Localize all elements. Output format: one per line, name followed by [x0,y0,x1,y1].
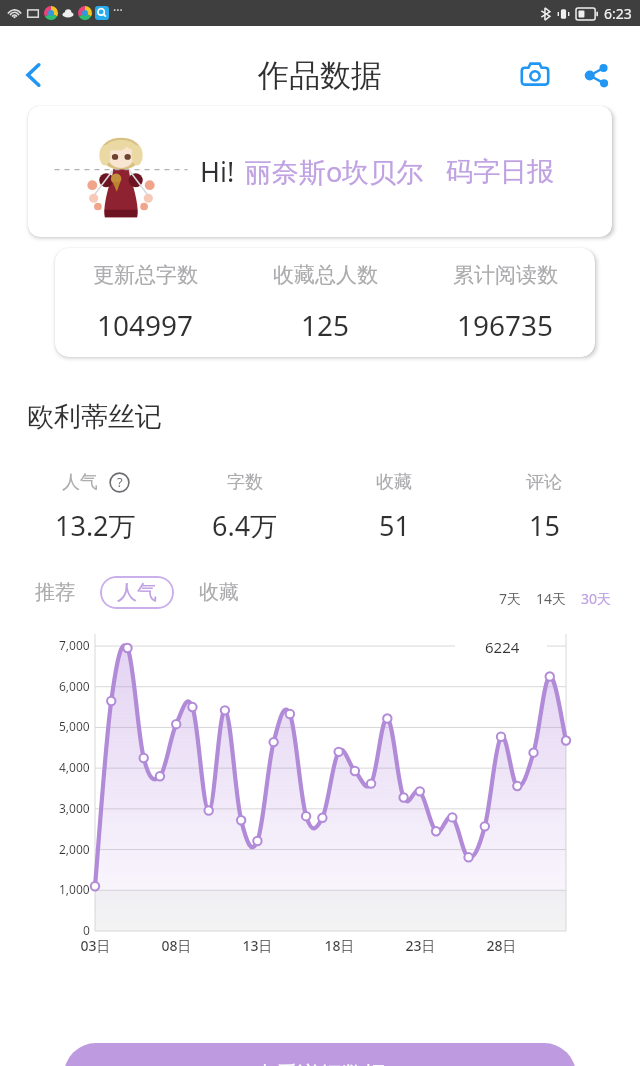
staticText: 4,000 [59,759,90,775]
staticText: 累计阅读数 [453,262,558,288]
staticText: 23日 [405,936,436,955]
button[interactable]: 推荐 [31,573,79,611]
staticText: 3,000 [59,800,90,816]
staticText: 104997 [97,306,194,344]
staticText: 2,000 [59,841,90,857]
staticText: 08日 [161,936,192,955]
staticText: 收藏 [199,580,239,604]
button[interactable]: 人气 [100,576,174,609]
button[interactable]: Help [109,472,130,493]
staticText: 更新总字数 [93,262,198,288]
staticText: Hi! [200,153,235,190]
staticText: 13.2万 [55,507,136,544]
button[interactable]: Share [570,49,622,101]
staticText: 丽奈斯o坎贝尔 [245,153,424,190]
button[interactable]: Camera [509,49,561,101]
button[interactable]: Hi! [28,106,612,237]
staticText: 码字日报 [446,155,554,189]
staticText: 欧利蒂丝记 [27,400,162,434]
staticText: 6,000 [59,678,90,694]
staticText: 查看详细数据 [254,1061,386,1066]
staticText: 6.4万 [212,507,278,544]
staticText: 18日 [324,936,355,955]
staticText: 收藏 [376,471,412,494]
staticText: 196735 [457,306,554,344]
staticText: 15 [529,507,560,544]
staticText: 30天 [581,589,612,608]
button[interactable]: 查看详细数据 [64,1043,576,1066]
staticText: 51 [379,507,410,544]
button[interactable]: 7天 [492,583,529,614]
staticText: 收藏总人数 [273,262,378,288]
staticText: 推荐 [35,580,75,604]
staticText: 人气 [62,471,98,494]
button[interactable]: 收藏 [195,573,243,611]
button[interactable]: Back [9,50,59,100]
button[interactable]: 14天 [529,583,574,614]
staticText: 评论 [526,471,562,494]
staticText: 7天 [499,589,522,608]
staticText: 125 [301,306,350,344]
staticText: 字数 [227,471,263,494]
button[interactable]: 30天 [574,583,619,614]
staticText: 0 [83,922,90,938]
staticText: 7,000 [59,637,90,653]
staticText: 作品数据 [258,56,382,95]
staticText: 人气 [117,580,157,605]
staticText: 03日 [80,936,111,955]
staticText: ? [117,473,123,491]
staticText: 13日 [242,936,273,955]
staticText: 14天 [536,589,567,608]
staticText: 6:23 [604,4,632,23]
staticText: 6224 [485,637,520,657]
staticText: 28日 [486,936,517,955]
staticText: ··· [113,2,123,18]
staticText: 1,000 [59,881,90,897]
staticText: 5,000 [59,718,90,734]
